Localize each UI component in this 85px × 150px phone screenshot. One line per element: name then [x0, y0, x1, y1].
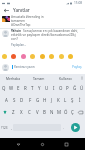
staticText: F: [29, 97, 32, 103]
staticText: D: [20, 97, 24, 103]
staticText: ,: [11, 125, 12, 130]
staticText: etkinlik ve paylaşım direkt/bonusbonusID…: [11, 33, 76, 41]
staticText: Ç: [71, 109, 74, 115]
staticText: C: [28, 109, 31, 115]
button[interactable]: W: [8, 82, 15, 94]
button[interactable]: More suggestions: [78, 74, 85, 82]
button[interactable]: ,: [9, 123, 13, 132]
button[interactable]: Merhaba: [0, 74, 26, 82]
button[interactable]: U: [43, 82, 50, 94]
staticText: L: [64, 97, 67, 103]
staticText: K: [57, 97, 60, 103]
staticText: Q: [2, 85, 6, 91]
staticText: Yanıtlar: [13, 7, 30, 13]
staticText: .: [63, 125, 64, 130]
button[interactable]: Send: [71, 123, 80, 132]
staticText: #mustafa #trending in tamamen: [11, 15, 51, 23]
button[interactable]: Q: [0, 82, 8, 94]
button[interactable]: Y: [36, 82, 43, 94]
button[interactable]: A: [2, 94, 10, 106]
staticText: E: [17, 85, 20, 91]
button[interactable]: Ç: [69, 106, 76, 118]
button[interactable]: Back: [13, 139, 24, 150]
staticText: Ü: [80, 85, 84, 91]
button[interactable]: Ü: [78, 82, 85, 94]
button[interactable]: C: [25, 106, 33, 118]
staticText: Ğ: [73, 85, 77, 91]
staticText: ?123: [1, 126, 8, 130]
button[interactable]: X: [17, 106, 25, 118]
button[interactable]: Paylaş: [71, 65, 83, 69]
button[interactable]: H: [41, 94, 48, 106]
button[interactable]: L: [62, 94, 69, 106]
button[interactable]: Emoji: [59, 54, 64, 59]
button[interactable]: Tamam: [26, 74, 52, 82]
button[interactable]: R: [22, 82, 29, 94]
button[interactable]: Emoji: [21, 54, 26, 59]
button[interactable]: S: [10, 94, 18, 106]
button[interactable]: B: [41, 106, 48, 118]
button[interactable]: N: [48, 106, 55, 118]
staticText: Sonuçlarınızı en çok kazandıran dahi,: [23, 29, 79, 33]
button[interactable]: Emoji: [30, 54, 35, 59]
staticText: N: [50, 109, 54, 115]
staticText: T: [31, 85, 34, 91]
staticText: M: [57, 109, 61, 115]
staticText: U: [45, 85, 49, 91]
staticText: Kullanıcı: [59, 76, 72, 80]
staticText: Ş: [71, 97, 74, 103]
button[interactable]: Emoji: [40, 54, 45, 59]
button[interactable]: .: [61, 123, 65, 132]
button[interactable]: Backspace: [76, 106, 85, 118]
staticText: H: [43, 97, 47, 103]
button[interactable]: V: [33, 106, 41, 118]
button[interactable]: K: [55, 94, 62, 106]
button[interactable]: İ: [76, 94, 83, 106]
staticText: V: [36, 109, 39, 115]
button[interactable]: M: [55, 106, 62, 118]
button[interactable]: P: [64, 82, 71, 94]
button[interactable]: I: [50, 82, 57, 94]
button[interactable]: G: [34, 94, 41, 106]
staticText: Merhaba: [6, 76, 20, 80]
button[interactable]: D: [18, 94, 26, 106]
staticText: 15:08: [74, 1, 83, 5]
button[interactable]: Emoji: [2, 54, 7, 59]
staticText: Tahsin: [11, 29, 22, 33]
button[interactable]: J: [48, 94, 55, 106]
button[interactable]: Emoji: [11, 54, 16, 59]
button[interactable]: T: [29, 82, 36, 94]
staticText: Tamam: [33, 76, 45, 80]
button[interactable]: F: [26, 94, 34, 106]
staticText: Yanıtınızı yazın: [14, 65, 35, 69]
button[interactable]: Home: [37, 139, 48, 150]
button[interactable]: E: [15, 82, 22, 94]
staticText: R: [24, 85, 27, 91]
staticText: X: [20, 109, 23, 115]
button[interactable]: O: [57, 82, 64, 94]
staticText: A: [5, 97, 8, 103]
staticText: Y: [38, 85, 41, 91]
staticText: J: [51, 97, 53, 103]
staticText: Paylaş: [72, 65, 82, 69]
button[interactable]: Emoji: [68, 54, 73, 59]
button[interactable]: Ş: [69, 94, 76, 106]
staticText: Ö: [64, 109, 68, 115]
staticText: S: [13, 97, 16, 103]
button[interactable]: Emoji: [49, 54, 54, 59]
staticText: O: [59, 85, 63, 91]
staticText: I: [53, 85, 55, 91]
staticText: B: [43, 109, 46, 115]
button[interactable]: Shift: [0, 106, 9, 118]
staticText: #OwnTheTop: [11, 23, 31, 27]
button[interactable]: Back: [2, 6, 10, 14]
staticText: 2s: [11, 28, 14, 32]
button[interactable]: Ğ: [71, 82, 78, 94]
button[interactable]: Kullanıcı: [52, 74, 78, 82]
button[interactable]: ?123: [0, 123, 9, 132]
button[interactable]: Recents: [61, 139, 72, 150]
staticText: İ: [79, 97, 81, 103]
button[interactable]: Z: [9, 106, 17, 118]
button[interactable]: Ö: [62, 106, 69, 118]
